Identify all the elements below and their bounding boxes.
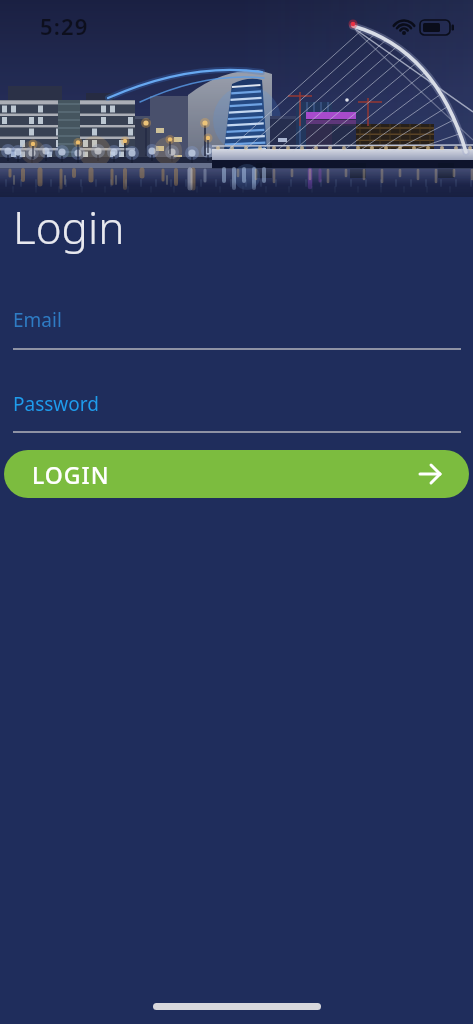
staticText: Login (13, 197, 125, 257)
staticText: Password (13, 391, 99, 417)
button[interactable]: Password (0, 384, 473, 436)
button[interactable]: Email (0, 300, 473, 352)
staticText: LOGIN (32, 459, 110, 490)
staticText: Email (13, 307, 62, 333)
staticText: 5:29 (40, 11, 89, 41)
button[interactable]: LOGIN (4, 450, 469, 498)
